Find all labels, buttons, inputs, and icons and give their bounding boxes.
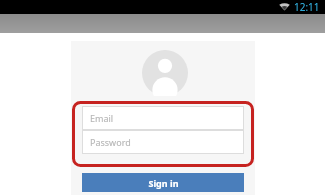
staticText: Password (90, 136, 131, 148)
button[interactable]: Sign in (82, 173, 244, 192)
other: Wi-Fi signal (279, 3, 290, 11)
staticText: Email (90, 112, 114, 124)
other: Profile photo (142, 50, 188, 96)
button[interactable]: Email (82, 106, 244, 130)
button[interactable]: Password (82, 130, 244, 154)
staticText: Sign in (148, 177, 179, 189)
staticText: 12:11 (294, 0, 320, 14)
